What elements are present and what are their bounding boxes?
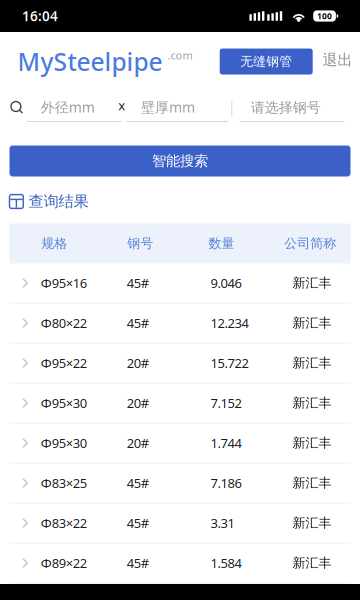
staticText: 45#	[127, 474, 149, 492]
staticText: Φ80×22	[41, 314, 87, 332]
staticText: 请选择钢号	[251, 99, 321, 116]
staticText: 20#	[127, 354, 149, 372]
staticText: 7.152	[210, 394, 241, 412]
button[interactable]: 请选择钢号	[239, 96, 344, 122]
button[interactable]: Φ89×22	[9, 543, 350, 583]
button[interactable]: Φ95×30	[9, 423, 350, 463]
staticText: 7.186	[210, 474, 241, 492]
staticText: Φ95×30	[41, 394, 87, 412]
staticText: 新汇丰	[293, 355, 332, 371]
staticText: 45#	[127, 274, 149, 292]
staticText: Φ89×22	[41, 554, 87, 572]
staticText: 规格	[41, 235, 67, 252]
button[interactable]: Φ95×30	[9, 383, 350, 423]
button[interactable]: Φ95×16	[9, 263, 350, 303]
staticText: 新汇丰	[293, 275, 332, 291]
staticText: 壁厚mm	[141, 97, 195, 116]
button[interactable]: Φ83×22	[9, 503, 350, 543]
staticText: 20#	[127, 434, 149, 452]
button[interactable]: Φ83×25	[9, 463, 350, 503]
button[interactable]: 无缝钢管	[220, 48, 313, 74]
staticText: Φ83×25	[41, 474, 87, 492]
button[interactable]: 外径mm	[27, 96, 122, 122]
staticText: 新汇丰	[293, 395, 332, 411]
staticText: .com	[167, 48, 192, 63]
staticText: 退出	[322, 51, 352, 69]
staticText: Φ95×22	[41, 354, 87, 372]
staticText: 20#	[127, 394, 149, 412]
staticText: Φ95×16	[41, 274, 87, 292]
staticText: Φ83×22	[41, 514, 87, 532]
staticText: 新汇丰	[293, 315, 332, 331]
staticText: 15.722	[210, 354, 248, 372]
staticText: 无缝钢管	[240, 53, 292, 69]
button[interactable]: 壁厚mm	[126, 96, 228, 122]
button[interactable]: Φ95×22	[9, 343, 350, 383]
staticText: 16:04	[22, 7, 58, 25]
staticText: 新汇丰	[293, 435, 332, 451]
button[interactable]: 智能搜索	[9, 145, 350, 176]
staticText: 45#	[127, 514, 149, 532]
staticText: 3.31	[210, 514, 234, 532]
staticText: 12.234	[210, 314, 248, 332]
staticText: x	[118, 96, 125, 114]
staticText: 9.046	[210, 274, 241, 292]
staticText: 新汇丰	[293, 515, 332, 531]
staticText: 外径mm	[41, 97, 95, 116]
staticText: 1.744	[210, 434, 241, 452]
button[interactable]: 退出	[322, 47, 352, 76]
staticText: 1.584	[210, 554, 241, 572]
staticText: 公司简称	[284, 235, 336, 252]
button[interactable]: Φ80×22	[9, 303, 350, 343]
staticText: 钢号	[127, 235, 153, 252]
staticText: 45#	[127, 314, 149, 332]
staticText: 数量	[209, 235, 235, 252]
staticText: 新汇丰	[293, 475, 332, 491]
staticText: MySteelpipe	[17, 45, 162, 78]
staticText: 查询结果	[28, 192, 88, 211]
staticText: 45#	[127, 554, 149, 572]
staticText: 智能搜索	[152, 152, 208, 170]
staticText: 新汇丰	[293, 555, 332, 571]
staticText: Φ95×30	[41, 434, 87, 452]
staticText: 100	[317, 10, 332, 22]
